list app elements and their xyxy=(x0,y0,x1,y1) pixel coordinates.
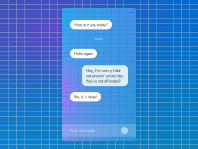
staticText: TODAY xyxy=(94,37,103,41)
staticText: How are you today? xyxy=(74,22,108,27)
staticText: Your message xyxy=(70,128,95,133)
staticText: Hello again xyxy=(74,51,93,56)
staticText: Hey, I'm sorry I did not answer yesterda… xyxy=(86,68,124,84)
staticText: No, it's okay! xyxy=(74,94,97,99)
